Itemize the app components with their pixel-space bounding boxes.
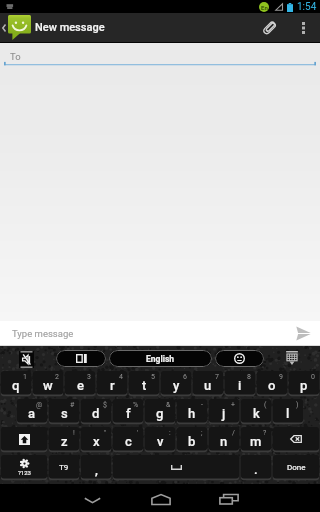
button[interactable]: a — [16, 399, 48, 423]
button[interactable]: Space — [112, 455, 240, 479]
button[interactable]: c — [112, 427, 144, 451]
staticText: p — [300, 378, 308, 393]
staticText: i — [238, 378, 242, 393]
staticText: New message — [35, 21, 105, 34]
button[interactable]: Keyboard layout — [285, 351, 299, 366]
button[interactable]: t — [128, 371, 160, 395]
button[interactable]: More options — [289, 13, 317, 42]
staticText: l — [286, 406, 290, 421]
staticText: T9 — [59, 463, 69, 472]
button[interactable]: i — [224, 371, 256, 395]
staticText: e — [77, 378, 84, 393]
button[interactable]: y — [160, 371, 192, 395]
staticText: $ — [103, 401, 107, 409]
button[interactable]: , — [80, 455, 112, 479]
staticText: c — [125, 434, 132, 449]
button[interactable]: v — [144, 427, 176, 451]
button[interactable]: b — [176, 427, 208, 451]
button[interactable]: h — [176, 399, 208, 423]
button[interactable]: Recent apps — [206, 484, 251, 512]
button[interactable]: q — [0, 371, 32, 395]
staticText: k — [253, 406, 260, 421]
staticText: o — [268, 378, 276, 393]
staticText: z — [61, 434, 68, 449]
button[interactable]: Shift — [0, 427, 48, 451]
staticText: 1:54 — [297, 1, 317, 13]
button[interactable]: T9 — [48, 455, 80, 479]
button[interactable]: n — [208, 427, 240, 451]
staticText: En — [261, 4, 268, 11]
staticText: j — [222, 406, 226, 421]
button[interactable]: Send — [286, 321, 320, 346]
button[interactable]: . — [240, 455, 272, 479]
button[interactable]: Delete — [272, 427, 320, 451]
button[interactable]: Home — [138, 484, 183, 512]
button[interactable]: e — [64, 371, 96, 395]
staticText: a — [28, 406, 36, 421]
staticText: To — [10, 51, 21, 62]
button[interactable]: f — [112, 399, 144, 423]
button[interactable]: s — [48, 399, 80, 423]
staticText: : — [169, 429, 171, 437]
button[interactable]: Back — [70, 484, 115, 512]
staticText: , — [95, 462, 98, 477]
button[interactable]: w — [32, 371, 64, 395]
staticText: n — [220, 434, 228, 449]
staticText: ( — [264, 401, 267, 409]
button[interactable]: Emoji — [215, 350, 264, 367]
staticText: f — [126, 406, 131, 421]
button[interactable]: l — [272, 399, 304, 423]
staticText: ) — [296, 401, 299, 409]
staticText: English — [146, 354, 175, 364]
button[interactable]: Voice input — [19, 351, 34, 368]
staticText: ?123 — [18, 469, 31, 476]
button[interactable]: z — [48, 427, 80, 451]
staticText: 0 — [311, 373, 315, 381]
button[interactable]: o — [256, 371, 288, 395]
staticText: d — [92, 406, 100, 421]
button[interactable]: New message — [0, 13, 320, 42]
staticText: r — [110, 378, 115, 393]
button[interactable]: r — [96, 371, 128, 395]
button[interactable]: k — [240, 399, 272, 423]
staticText: ' — [137, 429, 139, 437]
button[interactable]: Symbols — [0, 455, 48, 479]
staticText: v — [157, 434, 164, 449]
staticText: t — [142, 378, 147, 393]
button[interactable]: English — [109, 350, 212, 367]
staticText: 2 — [55, 373, 59, 381]
button[interactable]: g — [144, 399, 176, 423]
staticText: g — [156, 406, 164, 421]
staticText: 5 — [151, 373, 155, 381]
staticText: u — [204, 378, 212, 393]
button[interactable]: To — [0, 43, 320, 68]
button[interactable]: p — [288, 371, 320, 395]
staticText: % — [133, 401, 139, 409]
staticText: / — [232, 429, 235, 437]
staticText: # — [70, 401, 75, 409]
button[interactable]: j — [208, 399, 240, 423]
staticText: Done — [287, 463, 306, 472]
staticText: s — [61, 406, 68, 421]
button[interactable]: Attach — [252, 13, 287, 42]
staticText: b — [188, 434, 196, 449]
staticText: h — [188, 406, 196, 421]
button[interactable]: m — [240, 427, 272, 451]
staticText: 4 — [119, 373, 123, 381]
staticText: 6 — [183, 373, 187, 381]
staticText: 3 — [87, 373, 91, 381]
button[interactable]: x — [80, 427, 112, 451]
staticText: ; — [201, 429, 203, 437]
staticText: @ — [36, 401, 43, 409]
staticText: 9 — [279, 373, 283, 381]
staticText: 8 — [247, 373, 251, 381]
button[interactable]: Input method — [56, 350, 106, 367]
button[interactable]: Done — [272, 455, 320, 479]
staticText: 1 — [23, 373, 27, 381]
staticText: w — [43, 378, 53, 393]
button[interactable]: d — [80, 399, 112, 423]
staticText: 7 — [215, 373, 219, 381]
staticText: & — [166, 401, 171, 409]
staticText: + — [231, 401, 235, 409]
button[interactable]: u — [192, 371, 224, 395]
